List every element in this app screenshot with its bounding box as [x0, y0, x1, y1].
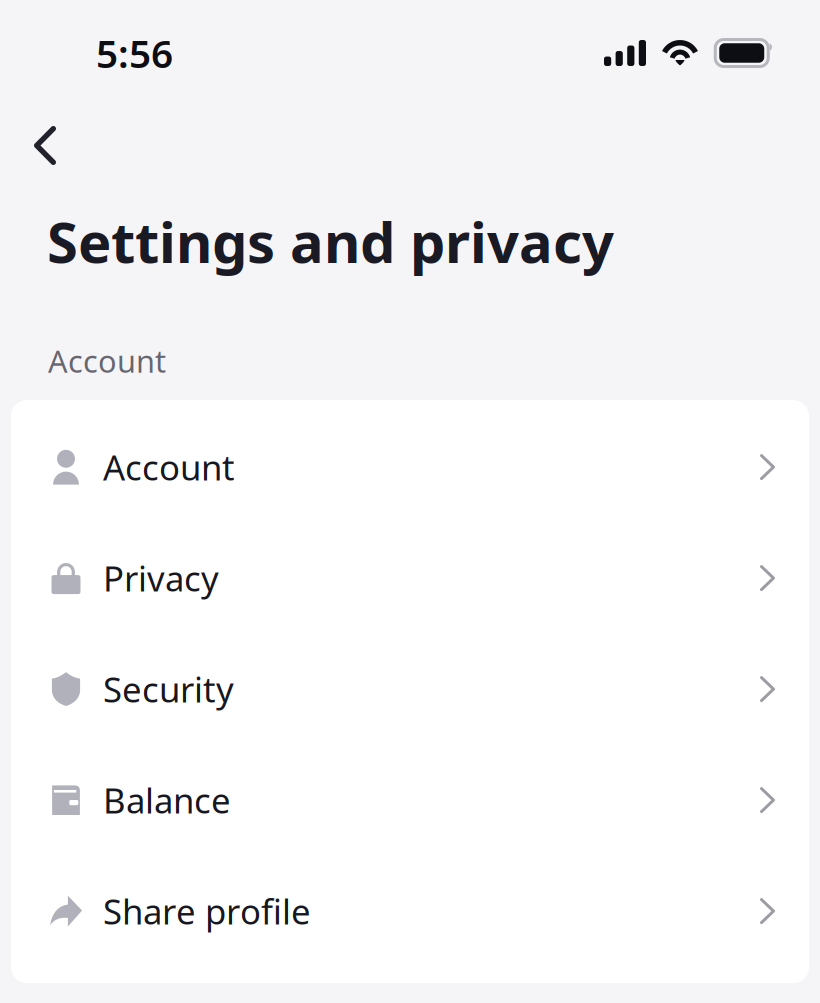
button[interactable]: Privacy [11, 523, 809, 634]
staticText: Account [103, 444, 235, 490]
button[interactable]: Balance [11, 745, 809, 856]
staticText: Account [48, 340, 166, 381]
button[interactable]: Share profile [11, 856, 809, 967]
staticText: 5:56 [96, 27, 173, 79]
button[interactable]: Back [0, 108, 80, 183]
staticText: Share profile [103, 888, 311, 934]
staticText: Security [103, 666, 234, 712]
button[interactable]: Account [11, 412, 809, 523]
staticText: Balance [103, 777, 231, 823]
button[interactable]: Security [11, 634, 809, 745]
staticText: Privacy [103, 555, 219, 601]
staticText: Settings and privacy [47, 204, 614, 278]
